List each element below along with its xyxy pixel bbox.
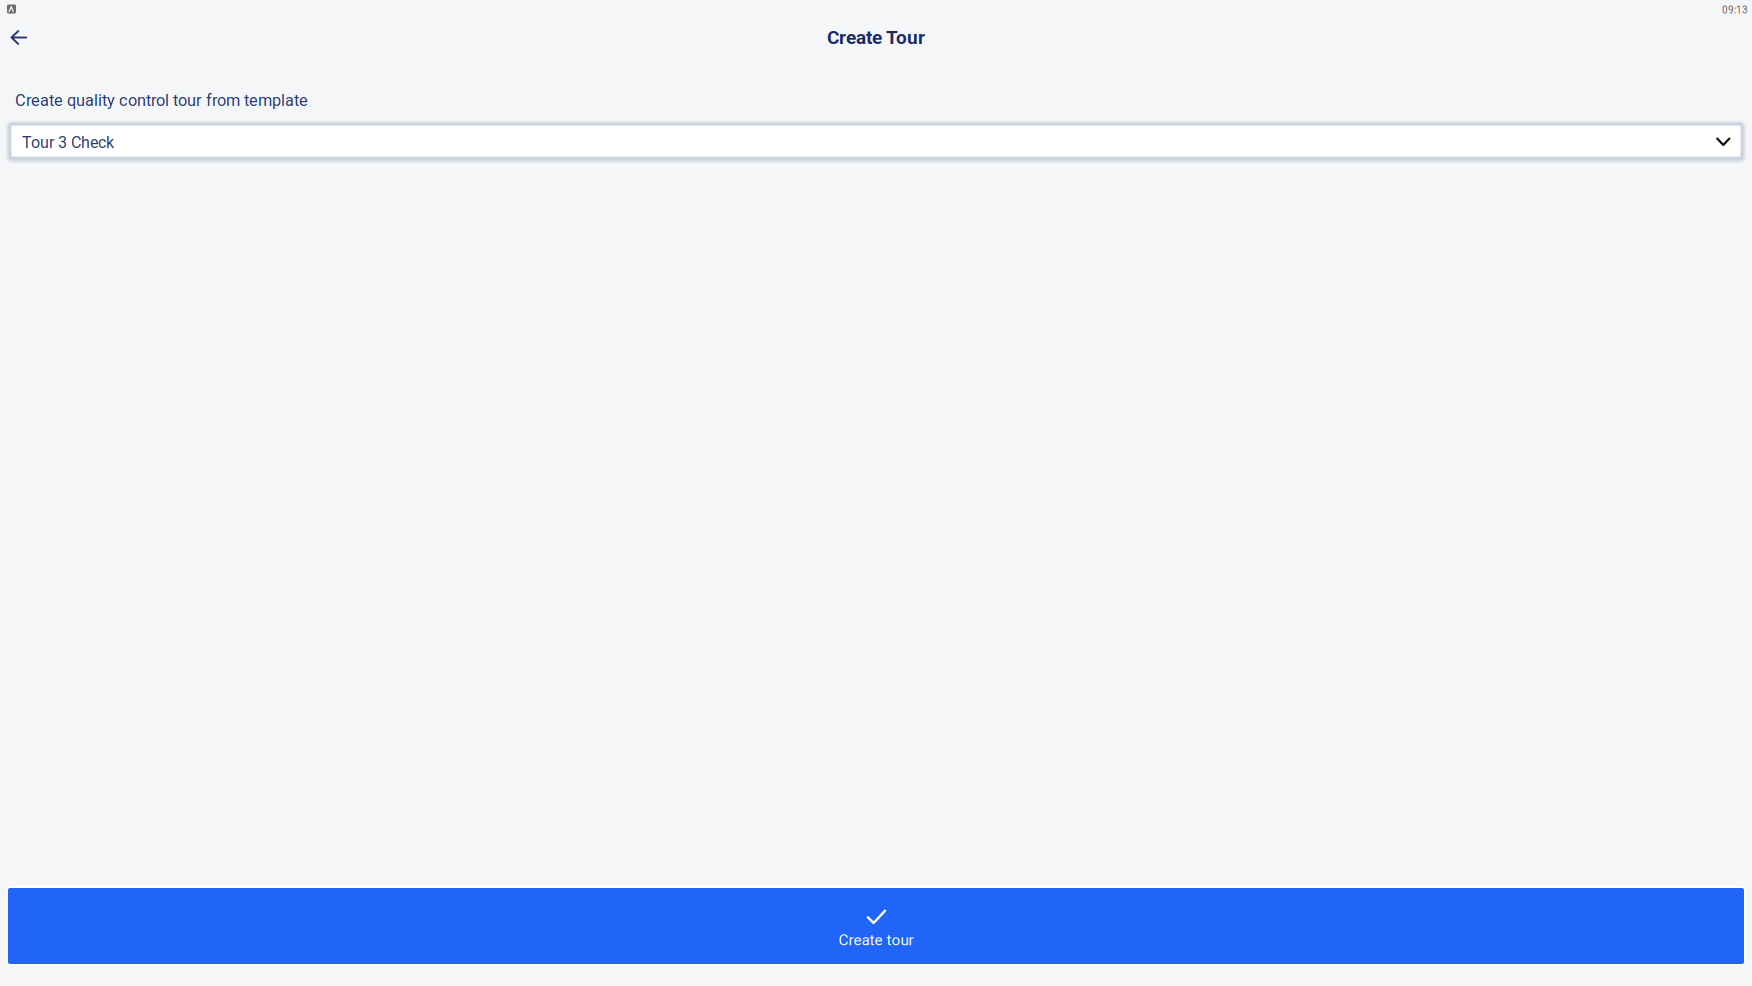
staticText: Create Tour: [827, 26, 925, 49]
staticText: 09:13: [1722, 4, 1748, 16]
staticText: Tour 3 Check: [22, 133, 114, 152]
staticText: Create tour: [838, 931, 913, 949]
button[interactable]: Create tour: [7, 886, 1745, 965]
button[interactable]: Back: [1, 19, 36, 55]
button[interactable]: Tour 3 Check: [10, 124, 1742, 158]
staticText: Create quality control tour from templat…: [15, 91, 308, 110]
